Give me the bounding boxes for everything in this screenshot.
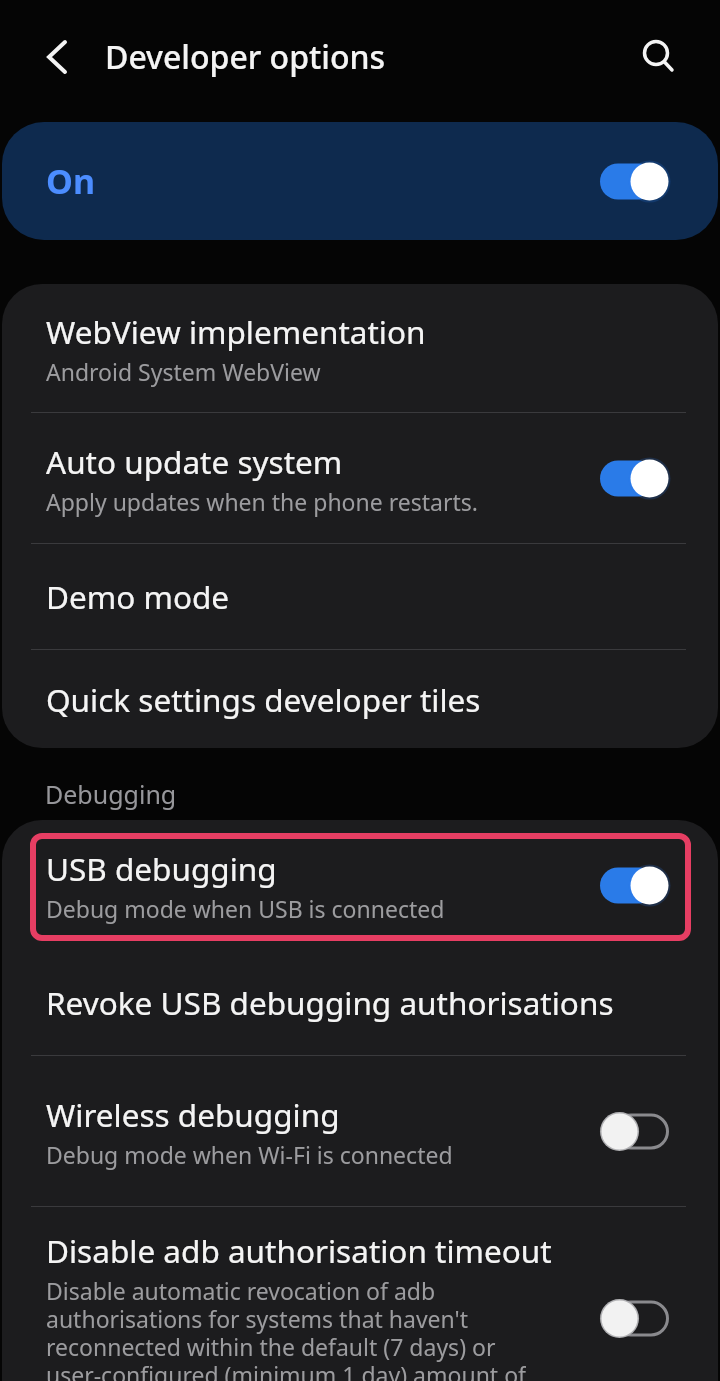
staticText: Debug mode when Wi-Fi is connected — [46, 1139, 453, 1170]
button[interactable]: Demo mode — [2, 544, 718, 649]
staticText: Demo mode — [46, 575, 230, 618]
staticText: Auto update system — [46, 440, 343, 483]
button[interactable]: Disable adb authorisation timeout — [2, 1207, 718, 1381]
staticText: On — [46, 158, 95, 204]
button[interactable]: Wireless debugging — [2, 1056, 718, 1206]
staticText: Apply updates when the phone restarts. — [46, 486, 478, 517]
staticText: Disable automatic revocation of adb auth… — [46, 1275, 526, 1381]
button[interactable] — [46, 39, 69, 75]
staticText: Wireless debugging — [46, 1093, 340, 1136]
staticText: Android System WebView — [46, 356, 321, 387]
staticText: Disable adb authorisation timeout — [46, 1229, 552, 1272]
button[interactable]: WebView implementation — [2, 284, 718, 412]
staticText: Quick settings developer tiles — [46, 678, 481, 721]
button[interactable]: Quick settings developer tiles — [2, 650, 718, 748]
button[interactable]: Revoke USB debugging authorisations — [2, 950, 718, 1055]
button[interactable]: USB debugging — [2, 820, 718, 950]
button[interactable]: On — [2, 122, 718, 240]
staticText: Debug mode when USB is connected — [46, 893, 445, 924]
staticText: Revoke USB debugging authorisations — [46, 981, 614, 1024]
button[interactable] — [642, 40, 676, 74]
button[interactable]: Auto update system — [2, 413, 718, 543]
staticText: Debugging — [45, 777, 177, 811]
staticText: Developer options — [105, 35, 386, 79]
staticText: USB debugging — [46, 847, 277, 890]
staticText: WebView implementation — [46, 310, 426, 353]
